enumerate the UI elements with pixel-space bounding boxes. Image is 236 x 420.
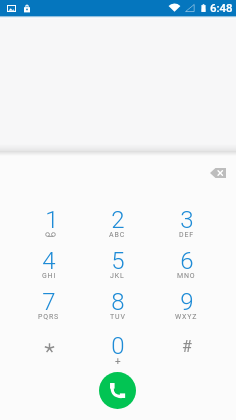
staticText: # bbox=[182, 337, 192, 356]
button[interactable]: 7 bbox=[15, 289, 83, 330]
staticText: 0 bbox=[111, 332, 125, 360]
staticText: 8 bbox=[111, 288, 125, 316]
staticText: TUV bbox=[110, 313, 126, 321]
staticText: MNO bbox=[177, 272, 196, 280]
button[interactable]: Backspace bbox=[204, 159, 232, 187]
button[interactable]: 2 bbox=[83, 207, 152, 248]
button[interactable]: 4 bbox=[15, 248, 83, 289]
staticText: ABC bbox=[109, 231, 126, 239]
staticText: + bbox=[115, 356, 121, 368]
staticText: 2 bbox=[111, 206, 125, 234]
staticText: 9 bbox=[180, 288, 194, 316]
staticText: JKL bbox=[110, 272, 125, 280]
button[interactable]: 9 bbox=[152, 289, 221, 330]
staticText: DEF bbox=[179, 231, 194, 239]
staticText: 6 bbox=[180, 247, 194, 275]
staticText: 4 bbox=[42, 247, 56, 275]
button[interactable]: 8 bbox=[83, 289, 152, 330]
staticText: 7 bbox=[42, 288, 56, 316]
staticText: PQRS bbox=[38, 313, 60, 321]
button[interactable]: 1 bbox=[15, 207, 83, 248]
staticText: 3 bbox=[180, 206, 194, 234]
staticText: GHI bbox=[42, 272, 57, 280]
staticText: 6:48 bbox=[210, 1, 233, 14]
button[interactable] bbox=[15, 330, 83, 378]
button[interactable]: 5 bbox=[83, 248, 152, 289]
staticText: 5 bbox=[111, 247, 125, 275]
button[interactable]: # bbox=[152, 330, 221, 378]
staticText: WXYZ bbox=[175, 313, 198, 321]
staticText: 1 bbox=[45, 206, 59, 234]
button[interactable]: 3 bbox=[152, 207, 221, 248]
button[interactable]: 0 bbox=[83, 330, 152, 378]
button[interactable]: Call bbox=[99, 372, 136, 409]
button[interactable]: 6 bbox=[152, 248, 221, 289]
